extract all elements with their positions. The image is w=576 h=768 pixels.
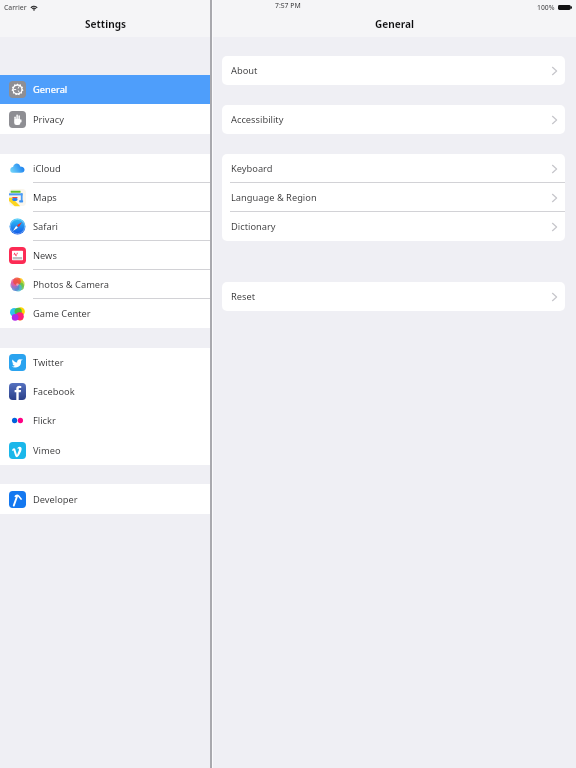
button[interactable]: News xyxy=(0,241,210,270)
staticText: iCloud xyxy=(33,162,61,175)
button[interactable]: General xyxy=(0,75,210,104)
button[interactable]: Developer xyxy=(0,484,210,514)
staticText: Photos & Camera xyxy=(33,278,109,291)
staticText: Facebook xyxy=(33,385,75,398)
staticText: Flickr xyxy=(33,414,56,427)
staticText: Maps xyxy=(33,191,57,204)
staticText: Carrier xyxy=(4,3,27,12)
button[interactable]: Vimeo xyxy=(0,435,210,465)
staticText: 100% xyxy=(537,3,555,12)
button[interactable]: Photos & Camera xyxy=(0,270,210,299)
staticText: General xyxy=(375,17,414,31)
button[interactable]: Reset xyxy=(222,282,565,311)
button[interactable]: Safari xyxy=(0,212,210,241)
button[interactable]: Dictionary xyxy=(222,212,565,241)
button[interactable]: Accessibility xyxy=(222,105,565,134)
button[interactable]: Maps xyxy=(0,183,210,212)
button[interactable]: Privacy xyxy=(0,104,210,134)
button[interactable]: Flickr xyxy=(0,406,210,435)
button[interactable]: iCloud xyxy=(0,154,210,183)
staticText: Vimeo xyxy=(33,444,61,457)
button[interactable]: About xyxy=(222,56,565,85)
staticText: News xyxy=(33,249,57,262)
staticText: Language & Region xyxy=(231,191,317,204)
button[interactable]: Twitter xyxy=(0,348,210,377)
staticText: Safari xyxy=(33,220,58,233)
button[interactable]: Game Center xyxy=(0,299,210,328)
button[interactable]: Keyboard xyxy=(222,154,565,183)
staticText: Dictionary xyxy=(231,220,276,233)
button[interactable]: Facebook xyxy=(0,377,210,406)
staticText: Developer xyxy=(33,493,78,506)
staticText: General xyxy=(33,83,68,96)
button[interactable]: Language & Region xyxy=(222,183,565,212)
staticText: Reset xyxy=(231,290,256,303)
staticText: 7:57 PM xyxy=(275,1,301,10)
staticText: Privacy xyxy=(33,113,65,126)
staticText: Accessibility xyxy=(231,113,284,126)
staticText: About xyxy=(231,64,258,77)
staticText: Keyboard xyxy=(231,162,273,175)
staticText: Twitter xyxy=(33,356,64,369)
staticText: Game Center xyxy=(33,307,91,320)
staticText: Settings xyxy=(85,17,126,31)
